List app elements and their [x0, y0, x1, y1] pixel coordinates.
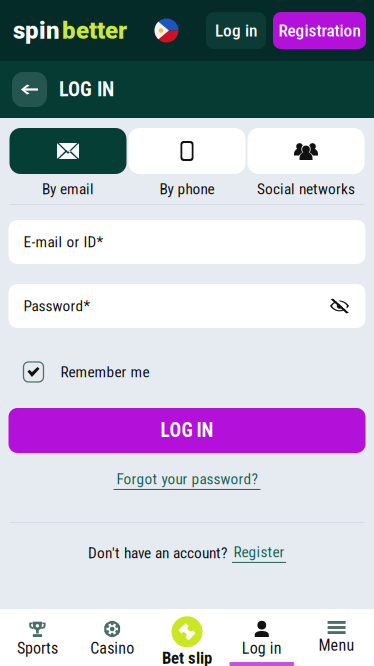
staticText: Log in — [215, 20, 257, 41]
button[interactable]: Forgot your password? — [113, 470, 260, 490]
staticText: LOG IN — [59, 78, 114, 101]
staticText: Bet slip — [162, 648, 212, 666]
button[interactable]: Menu — [299, 609, 374, 666]
button[interactable]: Casino — [75, 609, 150, 666]
button[interactable]: Register — [232, 543, 286, 563]
staticText: Register — [233, 543, 284, 561]
staticText: Forgot your password? — [116, 470, 257, 488]
staticText: LOG IN — [160, 419, 213, 442]
staticText: Menu — [319, 636, 355, 655]
staticText: Sports — [17, 639, 58, 658]
button[interactable]: Sports — [0, 609, 75, 666]
button[interactable]: By email — [9, 128, 126, 198]
button[interactable]: Log in — [206, 12, 266, 49]
staticText: Don't have an account? — [88, 544, 227, 562]
button[interactable]: Bet slip — [150, 609, 224, 666]
button[interactable]: Back — [12, 72, 47, 107]
button[interactable]: By phone — [128, 128, 245, 198]
staticText: spin — [13, 16, 60, 44]
button[interactable]: Social networks — [247, 128, 364, 198]
staticText: By email — [42, 180, 94, 198]
button[interactable]: Show password — [328, 298, 350, 314]
button[interactable]: Remember me — [0, 362, 374, 382]
staticText: better — [62, 16, 127, 44]
staticText: E-mail or ID* — [23, 233, 103, 251]
button[interactable]: Registration — [273, 12, 366, 49]
button[interactable]: Log in — [224, 609, 299, 666]
staticText: Remember me — [60, 363, 149, 381]
staticText: Log in — [242, 639, 282, 658]
staticText: Password* — [23, 297, 90, 315]
button[interactable]: LOG IN — [8, 408, 365, 453]
staticText: Casino — [90, 639, 134, 658]
staticText: Social networks — [257, 180, 355, 198]
staticText: Registration — [278, 20, 360, 41]
staticText: By phone — [159, 180, 214, 198]
